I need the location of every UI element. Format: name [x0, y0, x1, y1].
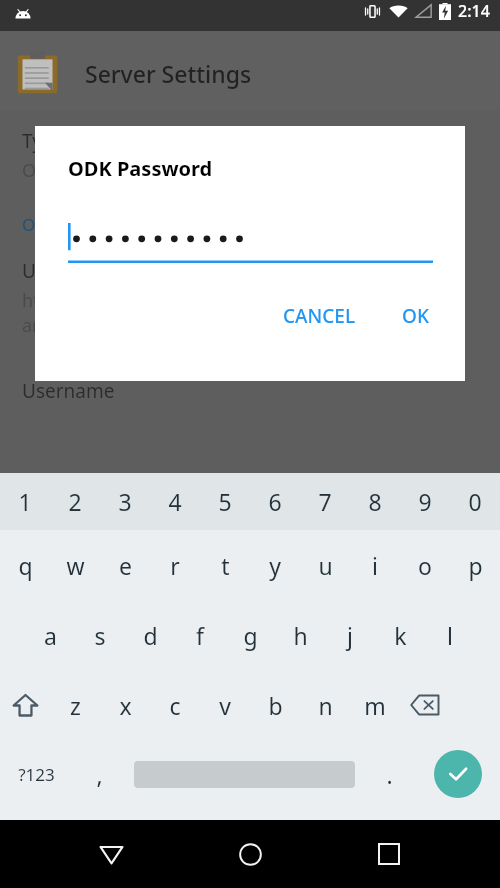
button[interactable]: w	[50, 530, 100, 600]
staticText: Username	[22, 378, 115, 404]
staticText: ODK Aggregate	[22, 158, 154, 183]
button[interactable]: x	[100, 670, 150, 740]
staticText: w	[66, 550, 85, 581]
button[interactable]: g	[225, 600, 275, 670]
button[interactable]: m	[350, 670, 400, 740]
staticText: a	[44, 620, 57, 651]
button[interactable]: y	[250, 530, 300, 600]
staticText: y	[269, 550, 281, 581]
staticText: CANCEL	[283, 303, 356, 329]
button[interactable]: h	[275, 600, 325, 670]
button[interactable]: Home	[222, 826, 278, 882]
button[interactable]: p	[450, 530, 500, 600]
staticText: Type	[22, 128, 65, 154]
button[interactable]: CANCEL	[271, 295, 368, 337]
staticText: c	[169, 690, 181, 721]
button[interactable]: 2	[50, 473, 100, 530]
button[interactable]: f	[175, 600, 225, 670]
button[interactable]: Backspace	[400, 670, 450, 740]
button[interactable]: c	[150, 670, 200, 740]
button[interactable]: ?123	[0, 740, 73, 808]
staticText: Server Settings	[85, 58, 252, 89]
button[interactable]: 9	[400, 473, 450, 530]
staticText: r	[170, 550, 180, 581]
button[interactable]: v	[200, 670, 250, 740]
button[interactable]: .	[363, 740, 416, 808]
button[interactable]: i	[350, 530, 400, 600]
staticText: e	[119, 550, 132, 581]
button[interactable]: q	[0, 530, 50, 600]
staticText: ?123	[18, 763, 55, 786]
button[interactable]: Space	[126, 740, 363, 808]
staticText: d	[143, 620, 158, 651]
button[interactable]: b	[250, 670, 300, 740]
staticText: amw.appspot.com	[22, 313, 178, 338]
staticText: 7	[318, 486, 332, 517]
button[interactable]: ,	[73, 740, 126, 808]
button[interactable]: o	[400, 530, 450, 600]
staticText: p	[468, 550, 483, 581]
button[interactable]: Shift	[0, 670, 50, 740]
button[interactable]: OK	[390, 295, 441, 337]
staticText: h	[293, 620, 308, 651]
button[interactable]: z	[50, 670, 100, 740]
staticText: j	[347, 620, 353, 651]
button[interactable]: Back	[83, 826, 139, 882]
staticText: 1	[18, 486, 32, 517]
button[interactable]: 1	[0, 473, 50, 530]
staticText: 8	[368, 486, 382, 517]
staticText: t	[221, 550, 230, 581]
staticText: s	[94, 620, 106, 651]
staticText: q	[18, 550, 33, 581]
button[interactable]: u	[300, 530, 350, 600]
staticText: 3	[118, 486, 132, 517]
staticText: ODK Password	[68, 155, 213, 182]
button[interactable]: n	[300, 670, 350, 740]
staticText: b	[268, 690, 283, 721]
button[interactable]: l	[425, 600, 475, 670]
button[interactable]: 7	[300, 473, 350, 530]
staticText: ODK Aggregate settings	[22, 213, 215, 236]
staticText: 4	[168, 486, 182, 517]
staticText: m	[364, 690, 386, 721]
staticText: 5	[218, 486, 232, 517]
staticText: 6	[268, 486, 282, 517]
button[interactable]: Recents	[361, 826, 417, 882]
staticText: f	[196, 620, 204, 651]
button[interactable]: r	[150, 530, 200, 600]
staticText: g	[243, 620, 258, 651]
staticText: URL	[22, 258, 58, 284]
button[interactable]: s	[75, 600, 125, 670]
staticText: i	[372, 550, 378, 581]
button[interactable]: 6	[250, 473, 300, 530]
staticText: https://opendatakit-	[22, 288, 192, 313]
staticText: 9	[418, 486, 432, 517]
button[interactable]: 8	[350, 473, 400, 530]
button[interactable]: 5	[200, 473, 250, 530]
staticText: k	[394, 620, 407, 651]
button[interactable]: a	[25, 600, 75, 670]
staticText: .	[386, 759, 393, 790]
staticText: o	[418, 550, 432, 581]
staticText: l	[447, 620, 453, 651]
button[interactable]: 3	[100, 473, 150, 530]
button[interactable]: t	[200, 530, 250, 600]
button[interactable]: j	[325, 600, 375, 670]
button[interactable]: 0	[450, 473, 500, 530]
staticText: ,	[96, 759, 103, 790]
staticText: z	[70, 690, 81, 721]
button[interactable]: Enter	[416, 740, 500, 808]
button[interactable]: e	[100, 530, 150, 600]
staticText: 2:14	[458, 0, 490, 22]
staticText: u	[318, 550, 333, 581]
staticText: 2	[68, 486, 82, 517]
staticText: n	[318, 690, 333, 721]
button[interactable]: d	[125, 600, 175, 670]
staticText: OK	[402, 303, 429, 329]
button[interactable]: 4	[150, 473, 200, 530]
staticText: v	[219, 690, 231, 721]
staticText: x	[119, 690, 132, 721]
button[interactable]: k	[375, 600, 425, 670]
staticText: 0	[468, 486, 482, 517]
